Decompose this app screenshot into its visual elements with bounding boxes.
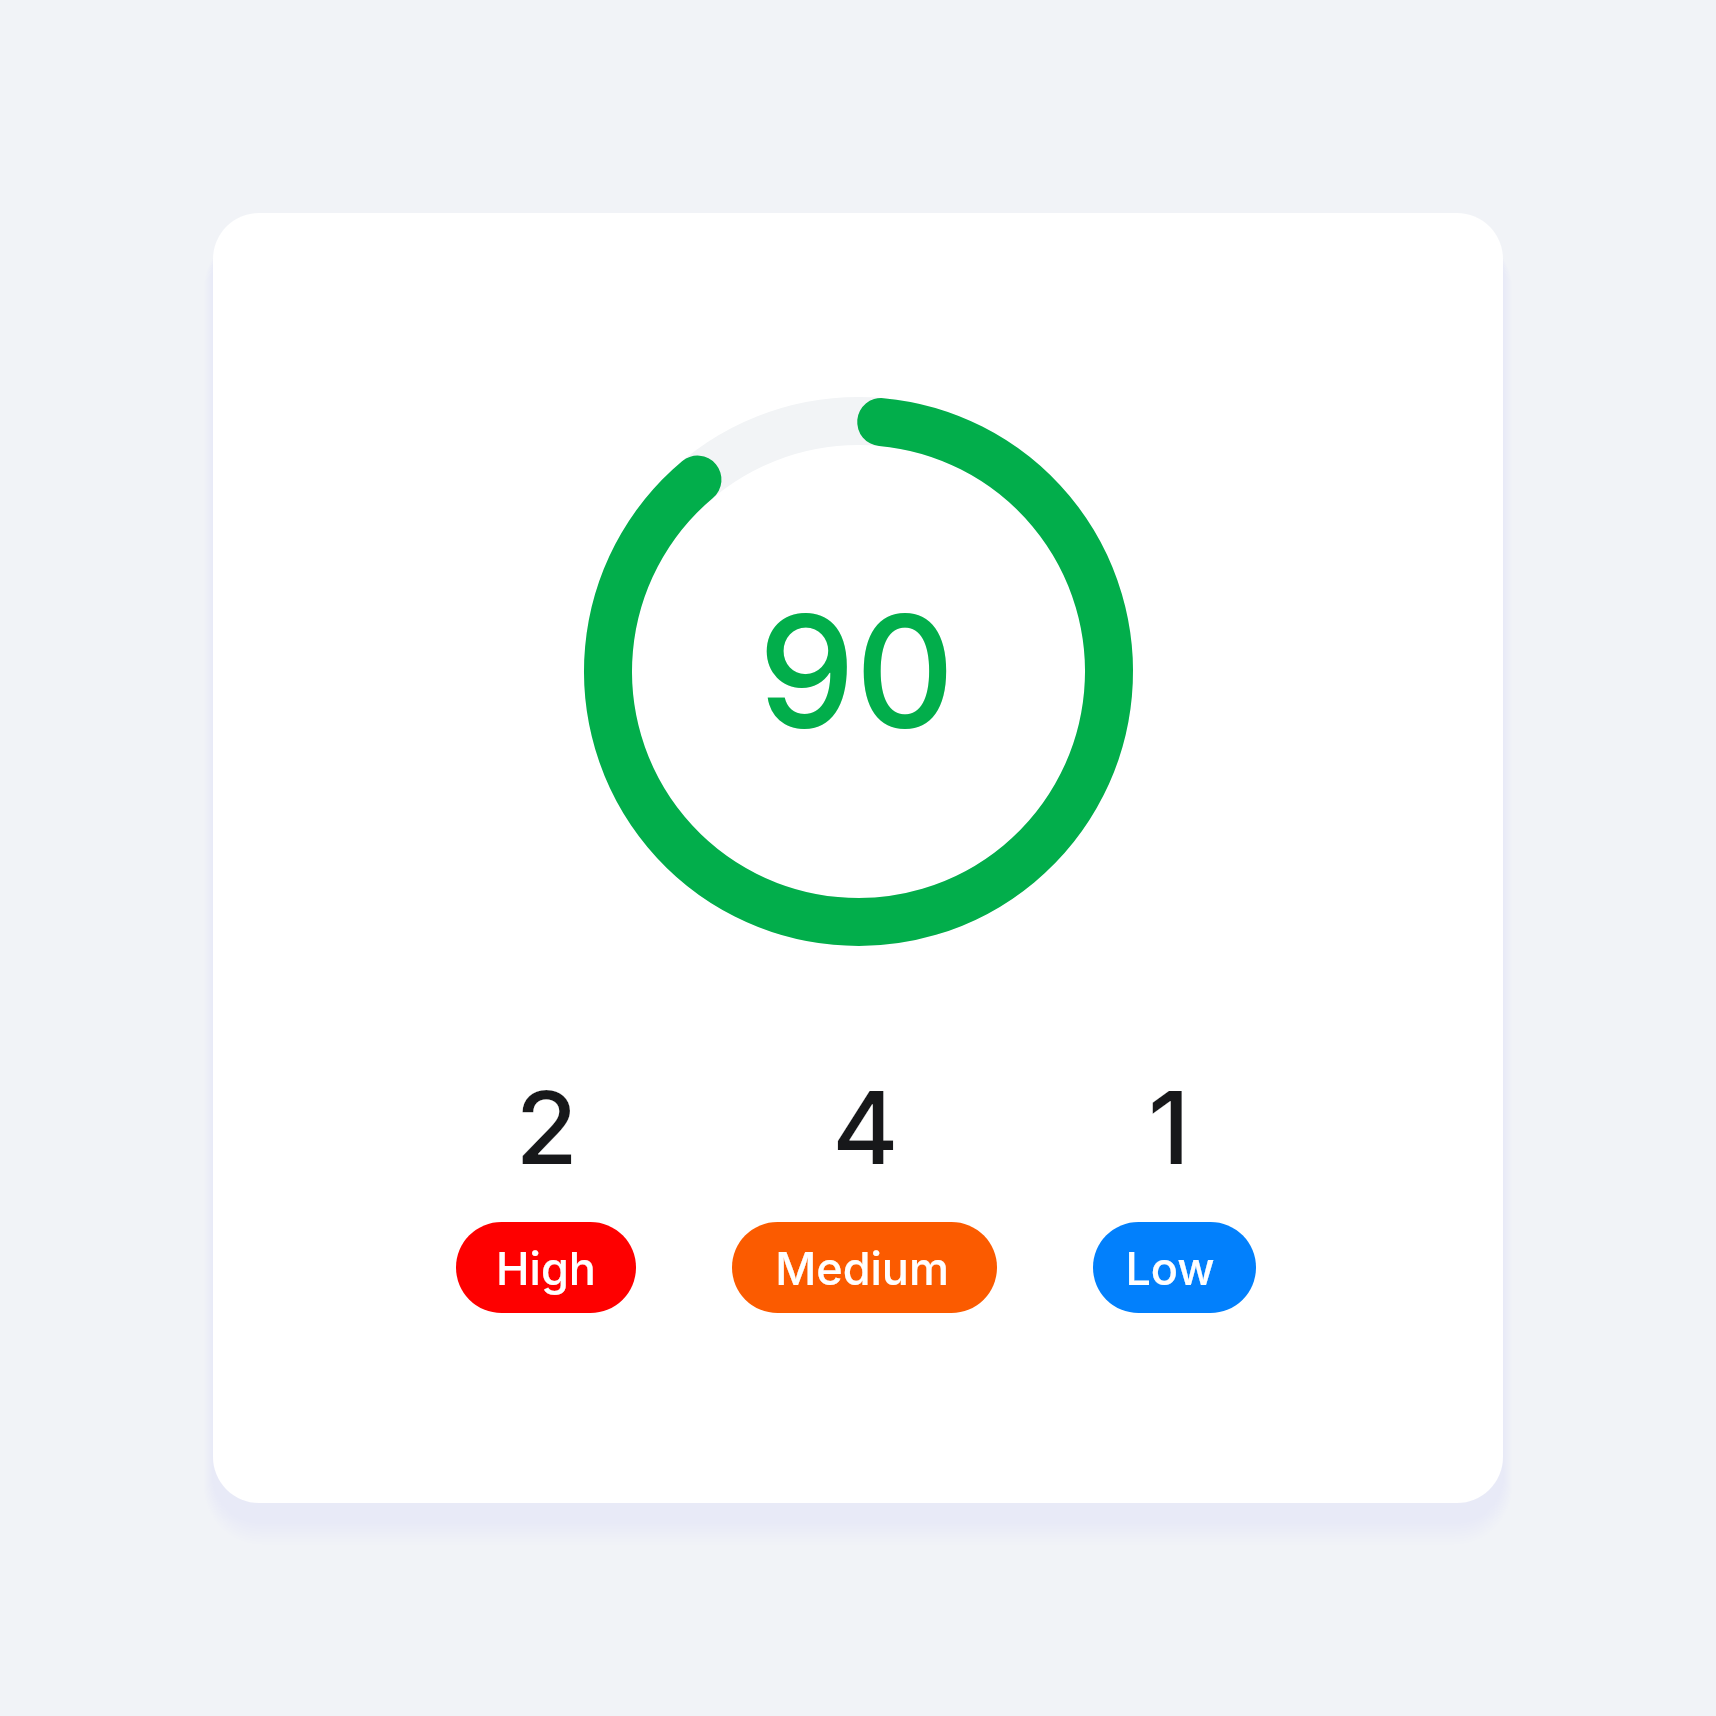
staticText: Low: [1125, 1241, 1215, 1295]
button[interactable]: Low: [1093, 1222, 1256, 1313]
staticText: 2: [515, 1066, 578, 1186]
staticText: 4: [832, 1066, 899, 1186]
staticText: Medium: [775, 1241, 949, 1295]
button[interactable]: Medium: [732, 1222, 997, 1313]
staticText: High: [496, 1241, 596, 1295]
staticText: 1: [1148, 1066, 1190, 1186]
staticText: 90: [758, 578, 955, 764]
other: Security score 90 out of 100: [584, 397, 1133, 946]
button[interactable]: High: [456, 1222, 636, 1313]
